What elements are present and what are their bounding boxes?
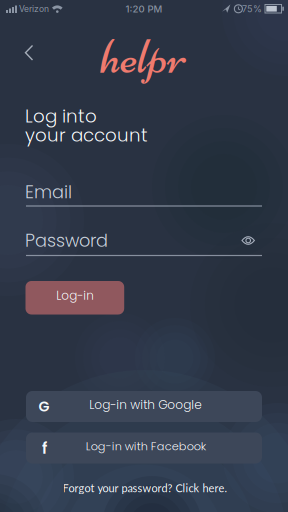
staticText: Email: [25, 180, 72, 204]
staticText: Forgot your password? Click here.: [62, 481, 227, 494]
button[interactable]: Forgot your password? Click here.: [25, 481, 265, 495]
staticText: Verizon: [19, 4, 49, 14]
button[interactable]: Back: [21, 44, 37, 61]
staticText: f: [42, 438, 47, 459]
staticText: your account: [25, 122, 148, 148]
staticText: Log into: [25, 103, 97, 129]
staticText: 75%: [242, 3, 262, 14]
button[interactable]: G: [26, 391, 262, 422]
staticText: G: [38, 396, 49, 416]
button[interactable]: Log-in: [25, 281, 124, 314]
staticText: Log-in with Google: [89, 396, 202, 413]
staticText: 1:20 PM: [125, 3, 162, 15]
button[interactable]: Show password: [241, 235, 256, 245]
button[interactable]: f: [26, 432, 262, 463]
staticText: Log-in with Facebook: [86, 438, 206, 454]
staticText: Password: [25, 228, 108, 253]
staticText: Log-in: [56, 287, 94, 304]
staticText: helpr: [100, 26, 186, 87]
